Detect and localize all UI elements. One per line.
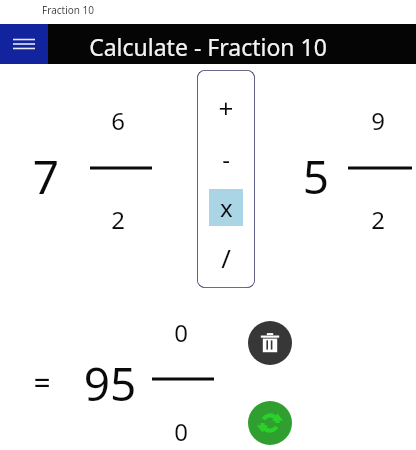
staticText: 5	[288, 145, 344, 205]
staticText: 6	[100, 104, 136, 140]
staticText: 2	[360, 203, 396, 239]
button[interactable]: x	[209, 189, 243, 226]
button[interactable]: +	[203, 90, 249, 134]
staticText: 0	[163, 415, 199, 450]
button[interactable]: Reset	[248, 401, 292, 445]
button[interactable]: Open navigation menu	[0, 24, 48, 64]
staticText: +	[203, 90, 249, 134]
button[interactable]: /	[203, 240, 249, 282]
staticText: -	[203, 142, 249, 182]
button[interactable]: -	[203, 142, 249, 182]
staticText: 0	[163, 316, 199, 352]
button[interactable]: 5	[288, 145, 344, 205]
staticText: 95	[70, 352, 150, 414]
staticText: 7	[18, 145, 74, 205]
staticText: /	[203, 240, 249, 282]
staticText: 9	[360, 104, 396, 140]
button[interactable]: Delete	[248, 321, 292, 365]
button[interactable]: 95	[70, 352, 150, 414]
staticText: =	[22, 362, 62, 407]
staticText: Calculate - Fraction 10	[58, 31, 358, 66]
staticText: Fraction 10	[8, 3, 128, 18]
staticText: x	[220, 191, 233, 224]
button[interactable]: 7	[18, 145, 74, 205]
staticText: 2	[100, 203, 136, 239]
